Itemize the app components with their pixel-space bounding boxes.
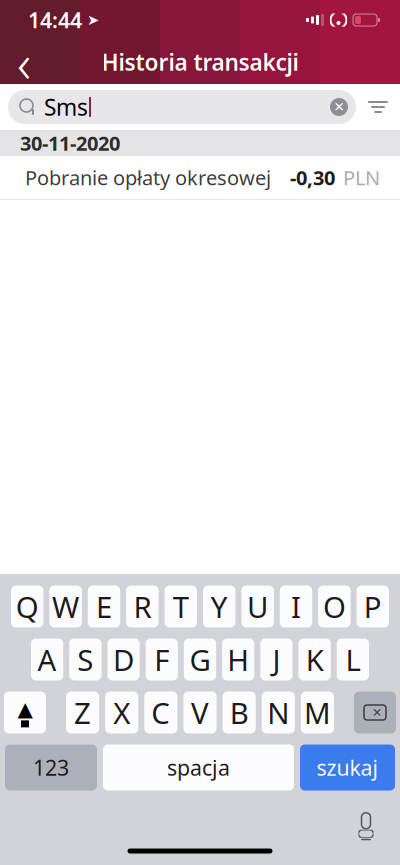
- staticText: ✕: [333, 99, 344, 114]
- staticText: 123: [33, 753, 69, 782]
- button[interactable]: K: [299, 638, 331, 680]
- button[interactable]: Clear search: [322, 90, 356, 124]
- button[interactable]: F: [146, 638, 178, 680]
- staticText: W: [52, 587, 79, 626]
- button[interactable]: 123: [5, 744, 97, 790]
- staticText: N: [267, 693, 289, 732]
- staticText: PLN: [343, 164, 380, 191]
- button[interactable]: Pobranie opłaty okresowej: [0, 156, 400, 200]
- staticText: H: [227, 640, 249, 679]
- button[interactable]: O: [318, 585, 351, 627]
- button[interactable]: X: [105, 691, 138, 733]
- staticText: Sms: [44, 92, 88, 122]
- staticText: spacja: [167, 753, 230, 782]
- staticText: S: [77, 640, 93, 679]
- button[interactable]: Delete: [354, 691, 396, 733]
- staticText: I: [291, 587, 301, 626]
- staticText: K: [306, 640, 324, 679]
- button[interactable]: A: [31, 638, 63, 680]
- staticText: -0,30: [290, 164, 335, 191]
- button[interactable]: Q: [11, 585, 43, 627]
- button[interactable]: Filter: [356, 85, 400, 129]
- button[interactable]: P: [357, 585, 389, 627]
- staticText: O: [323, 587, 346, 626]
- staticText: 30-11-2020: [20, 130, 120, 156]
- staticText: Y: [211, 587, 228, 626]
- button[interactable]: D: [107, 638, 140, 680]
- staticText: R: [133, 587, 151, 626]
- button[interactable]: Y: [203, 585, 235, 627]
- staticText: V: [191, 693, 209, 732]
- button[interactable]: V: [183, 691, 216, 733]
- button[interactable]: C: [144, 691, 177, 733]
- staticText: E: [96, 587, 112, 626]
- staticText: 14:44: [28, 6, 82, 34]
- button[interactable]: T: [165, 585, 197, 627]
- staticText: szukaj: [316, 753, 378, 782]
- staticText: Pobranie opłaty okresowej: [25, 164, 271, 191]
- button[interactable]: Back: [0, 40, 48, 84]
- staticText: Q: [16, 587, 39, 626]
- button[interactable]: Shift: [4, 691, 46, 733]
- staticText: C: [151, 693, 170, 732]
- staticText: F: [154, 640, 169, 679]
- button[interactable]: R: [126, 585, 159, 627]
- button[interactable]: spacja: [103, 744, 294, 790]
- staticText: D: [113, 640, 134, 679]
- button[interactable]: Z: [66, 691, 99, 733]
- staticText: ✕: [372, 706, 382, 719]
- button[interactable]: I: [280, 585, 312, 627]
- button[interactable]: W: [49, 585, 82, 627]
- staticText: B: [230, 693, 249, 732]
- button[interactable]: U: [241, 585, 274, 627]
- button[interactable]: E: [88, 585, 120, 627]
- staticText: A: [38, 640, 57, 679]
- staticText: ▲: [17, 698, 32, 720]
- staticText: J: [272, 640, 280, 679]
- staticText: ‹: [17, 27, 31, 97]
- staticText: ➤: [87, 12, 99, 28]
- staticText: T: [173, 587, 189, 626]
- button[interactable]: B: [223, 691, 256, 733]
- staticText: U: [247, 587, 268, 626]
- button[interactable]: H: [222, 638, 254, 680]
- button[interactable]: szukaj: [300, 744, 395, 790]
- staticText: Z: [74, 693, 91, 732]
- staticText: G: [189, 640, 210, 679]
- button[interactable]: M: [301, 691, 334, 733]
- staticText: L: [345, 640, 360, 679]
- button[interactable]: L: [337, 638, 369, 680]
- staticText: X: [113, 693, 130, 732]
- button[interactable]: Dictate: [344, 804, 388, 848]
- staticText: P: [364, 587, 382, 626]
- button[interactable]: N: [262, 691, 295, 733]
- staticText: M: [304, 693, 331, 732]
- staticText: Historia transakcji: [101, 47, 298, 77]
- button[interactable]: G: [184, 638, 216, 680]
- button[interactable]: S: [69, 638, 101, 680]
- button[interactable]: J: [260, 638, 292, 680]
